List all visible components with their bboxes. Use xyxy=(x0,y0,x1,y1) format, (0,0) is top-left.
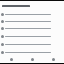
button[interactable] xyxy=(0,25,64,32)
button[interactable] xyxy=(43,56,64,63)
button[interactable] xyxy=(0,32,64,40)
button[interactable] xyxy=(0,18,64,25)
button[interactable] xyxy=(22,56,43,63)
button[interactable] xyxy=(0,40,64,48)
button[interactable] xyxy=(0,56,22,63)
button[interactable] xyxy=(0,48,64,56)
button[interactable] xyxy=(0,11,64,18)
